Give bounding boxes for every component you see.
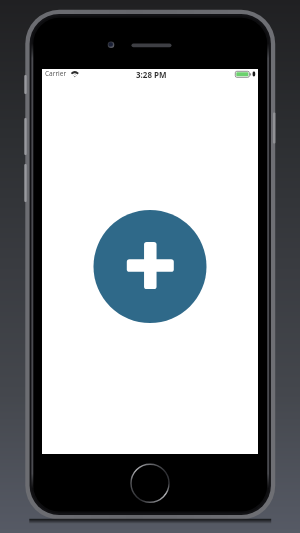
staticText: 3:28 PM [136,69,167,80]
button[interactable]: Add [93,210,206,323]
staticText: Carrier [45,69,67,78]
